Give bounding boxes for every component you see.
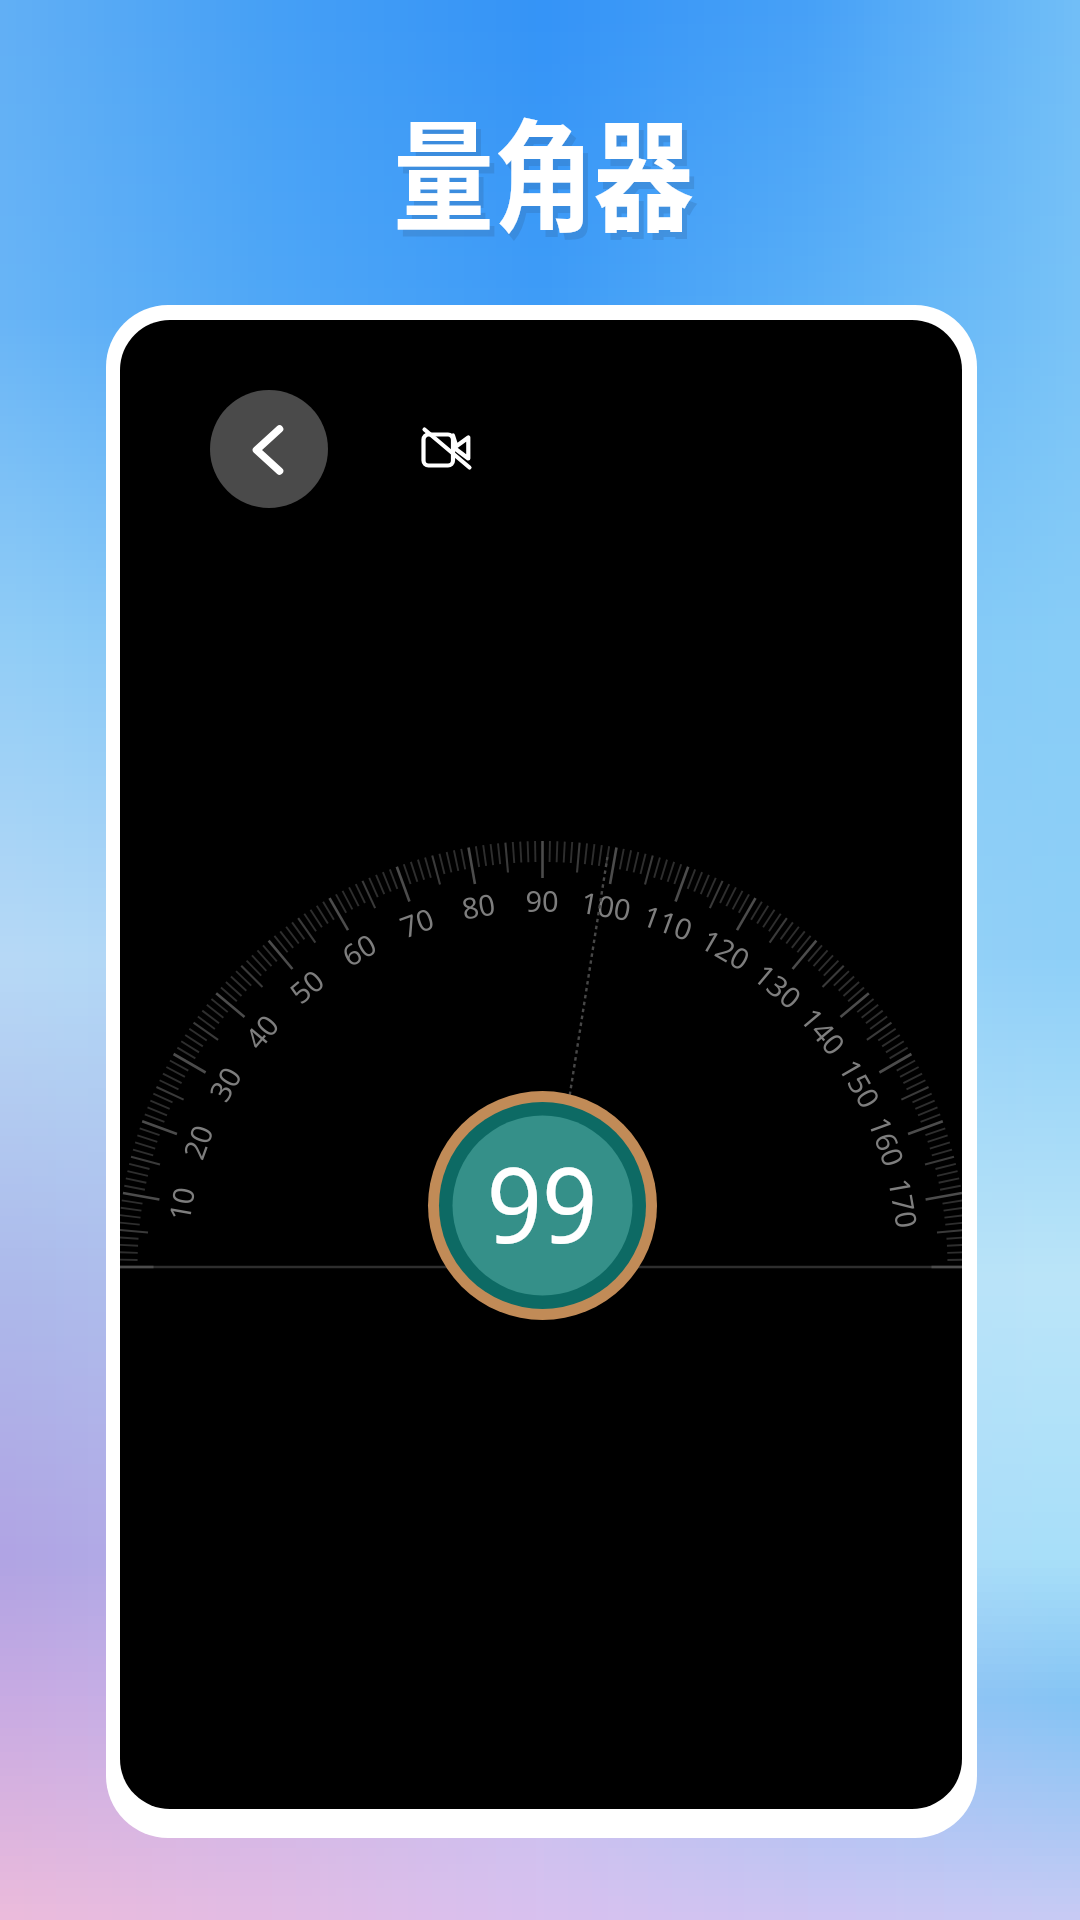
- button[interactable]: Angle value 99 degrees: [428, 1091, 657, 1320]
- button[interactable]: Toggle camera: [411, 417, 483, 489]
- button[interactable]: Back: [210, 390, 328, 508]
